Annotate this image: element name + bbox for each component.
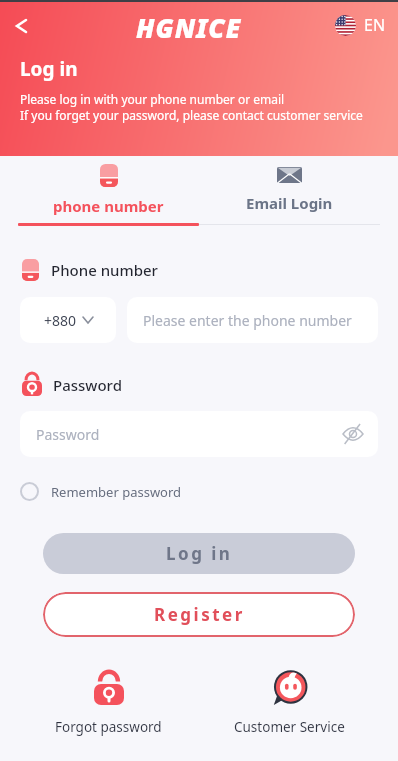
staticText: Email Login — [246, 193, 333, 213]
staticText: phone number — [53, 196, 164, 216]
staticText: Password — [53, 375, 122, 395]
button[interactable]: Log in — [43, 533, 355, 574]
button[interactable]: Please enter the phone number — [127, 297, 378, 343]
staticText: Please log in with your phone number or … — [20, 91, 285, 107]
button[interactable]: Register — [43, 592, 355, 637]
staticText: If you forget your password, please cont… — [20, 107, 363, 123]
staticText: Log in — [166, 542, 233, 565]
button[interactable]: phone number — [18, 164, 199, 216]
button[interactable]: Forgot password — [18, 670, 199, 736]
staticText: Log in — [20, 56, 78, 82]
staticText: Please enter the phone number — [143, 311, 352, 330]
staticText: +880 — [44, 311, 77, 330]
staticText: Remember password — [51, 483, 182, 501]
staticText: Register — [154, 603, 245, 626]
staticText: Phone number — [51, 260, 158, 280]
button[interactable]: Customer Service — [199, 670, 380, 736]
staticText: EN — [364, 14, 386, 36]
staticText: Password — [36, 425, 100, 444]
button[interactable]: EN — [335, 14, 386, 36]
button[interactable]: Email Login — [199, 164, 380, 213]
button[interactable]: Password — [20, 411, 378, 457]
staticText: Forgot password — [55, 718, 162, 736]
button[interactable]: +880 — [20, 297, 116, 343]
button[interactable] — [9, 14, 33, 38]
button[interactable]: Remember password — [20, 482, 182, 501]
staticText: HGNICE — [136, 10, 242, 45]
staticText: Customer Service — [234, 718, 345, 736]
